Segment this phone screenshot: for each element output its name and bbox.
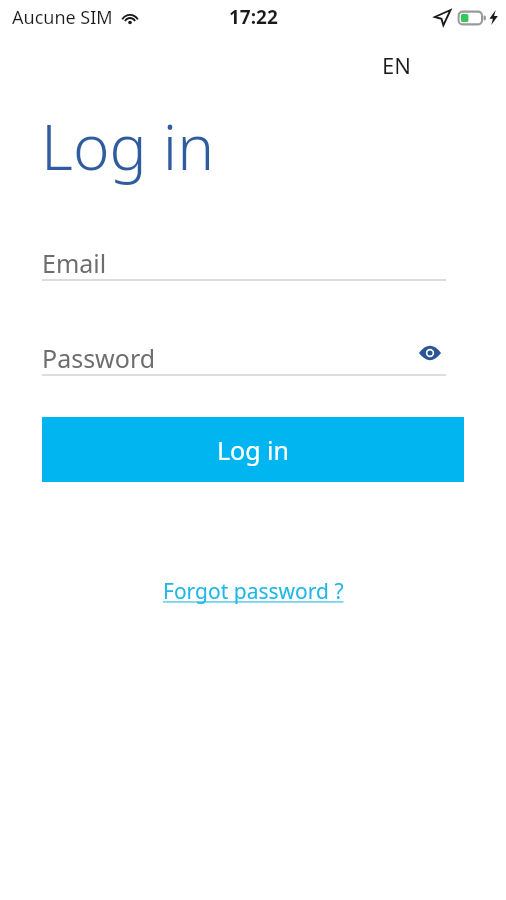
staticText: Log in xyxy=(41,104,215,188)
button[interactable]: Password xyxy=(42,341,446,375)
staticText: EN xyxy=(382,50,411,80)
staticText: 17:22 xyxy=(229,4,278,30)
button[interactable]: Forgot password ? xyxy=(155,574,352,609)
staticText: Password xyxy=(42,341,156,375)
staticText: Aucune SIM xyxy=(12,5,113,30)
staticText: Forgot password ? xyxy=(163,577,344,606)
button[interactable]: EN xyxy=(376,46,417,84)
staticText: Log in xyxy=(217,433,290,467)
button[interactable]: Log in xyxy=(42,417,464,482)
button[interactable]: Email xyxy=(42,246,446,280)
button[interactable]: Show password xyxy=(415,338,445,368)
staticText: Email xyxy=(42,246,107,280)
